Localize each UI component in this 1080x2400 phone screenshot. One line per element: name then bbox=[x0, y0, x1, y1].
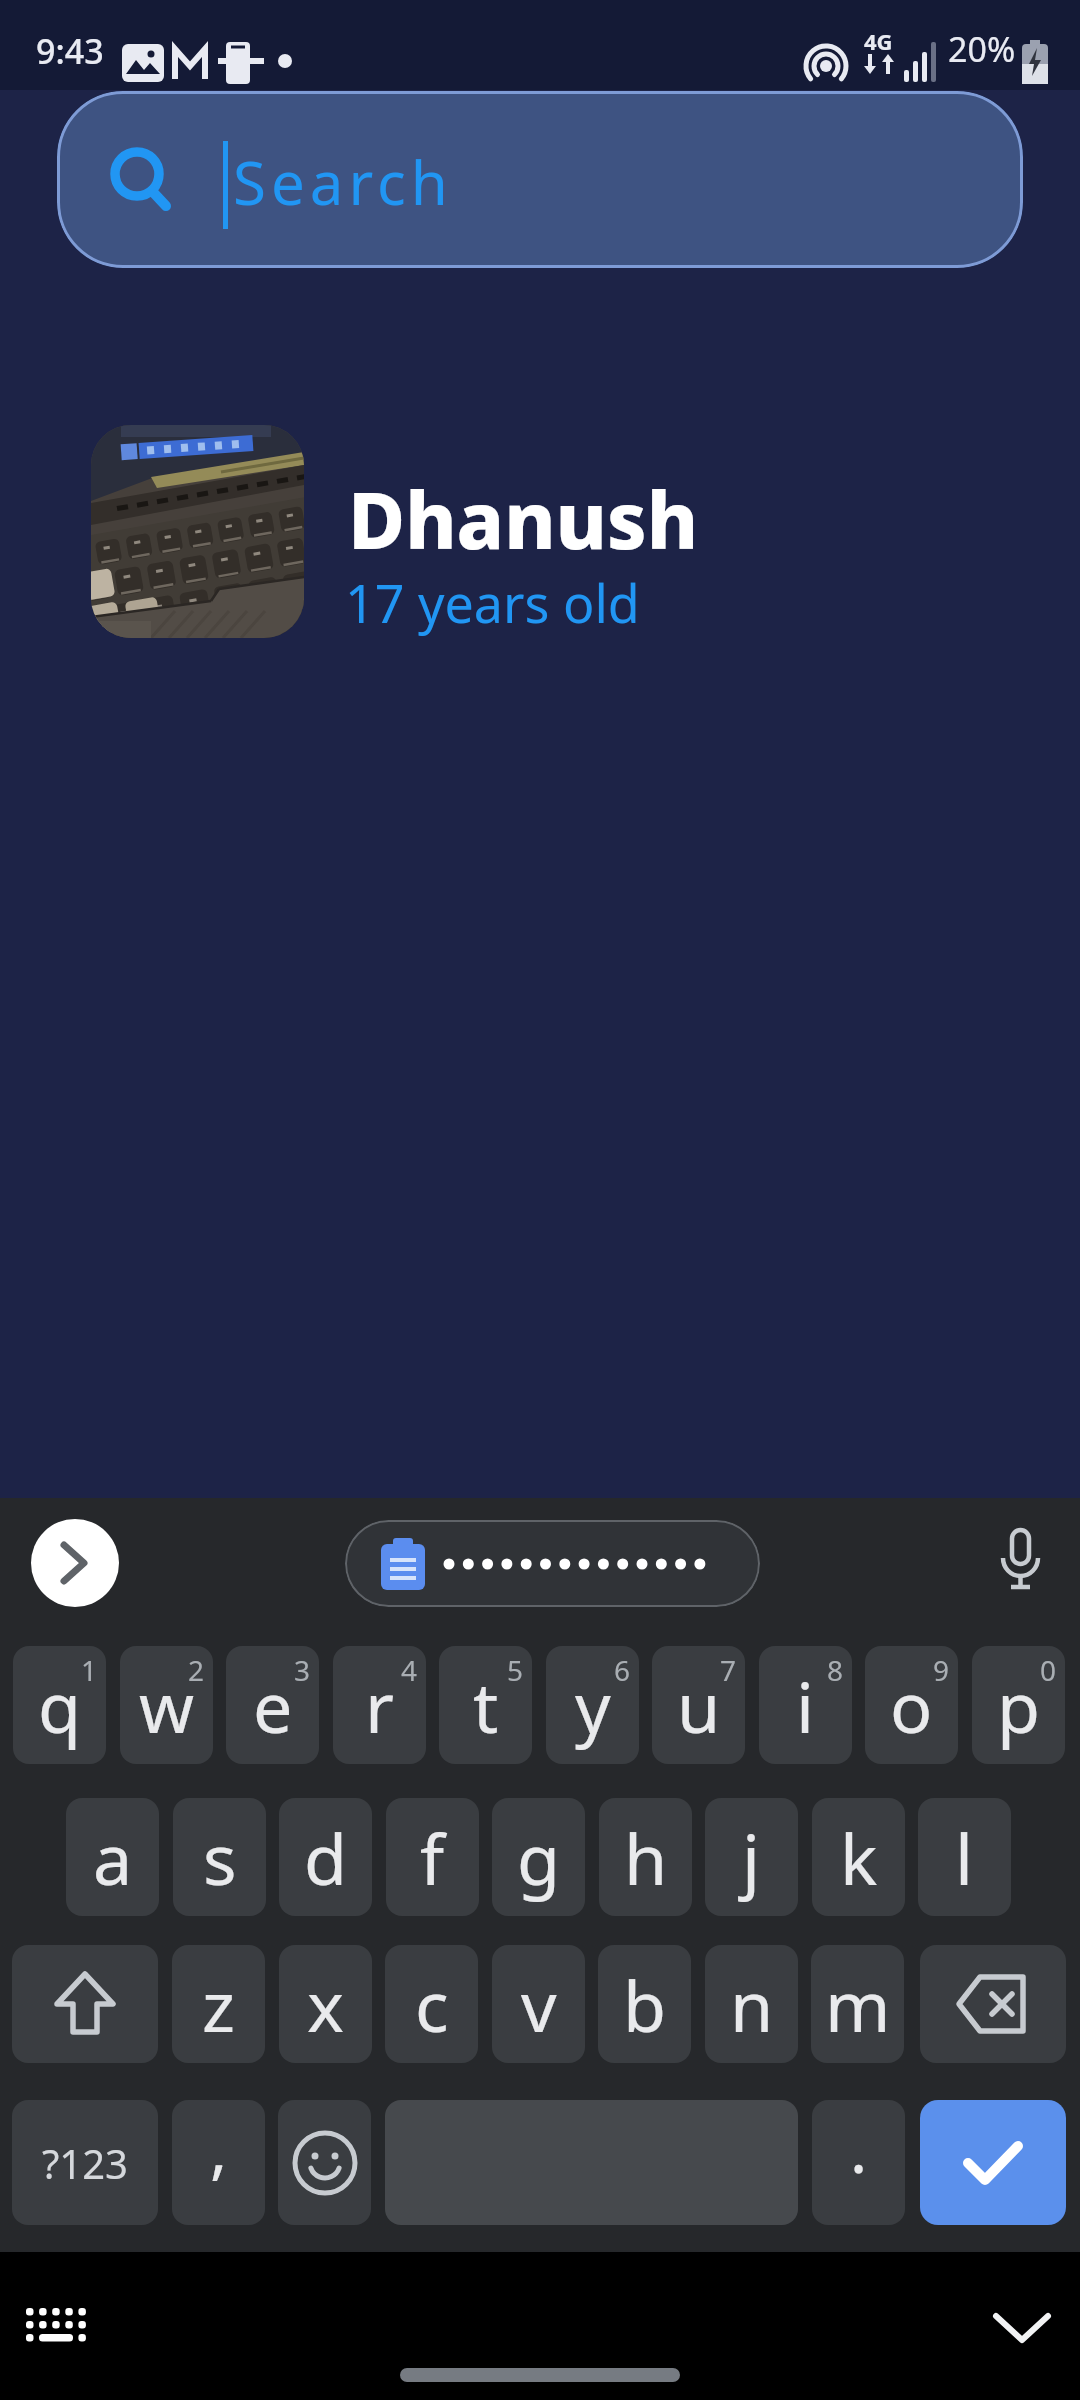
staticText: . bbox=[850, 2105, 868, 2192]
button[interactable]: e bbox=[226, 1646, 319, 1764]
button[interactable]: x bbox=[279, 1945, 372, 2063]
button[interactable] bbox=[31, 1519, 119, 1607]
staticText: 5 bbox=[507, 1651, 524, 1689]
button[interactable]: s bbox=[173, 1798, 266, 1916]
staticText: a bbox=[93, 1810, 133, 1905]
staticText: s bbox=[203, 1810, 237, 1905]
staticText: l bbox=[955, 1810, 974, 1905]
button[interactable]: u bbox=[652, 1646, 745, 1764]
button[interactable]: r bbox=[333, 1646, 426, 1764]
staticText: 3 bbox=[294, 1651, 311, 1689]
button[interactable]: t bbox=[439, 1646, 532, 1764]
button[interactable]: b bbox=[598, 1945, 691, 2063]
staticText: 6 bbox=[614, 1651, 631, 1689]
staticText: g bbox=[517, 1810, 561, 1905]
button[interactable] bbox=[920, 1945, 1066, 2063]
staticText: 9:43 bbox=[36, 28, 104, 74]
button[interactable] bbox=[998, 1528, 1042, 1594]
button[interactable] bbox=[920, 2100, 1066, 2225]
staticText: n bbox=[730, 1957, 774, 2052]
staticText: h bbox=[624, 1810, 668, 1905]
staticText: Search bbox=[233, 141, 453, 223]
staticText: v bbox=[521, 1957, 557, 2052]
button[interactable]: ?123 bbox=[12, 2100, 158, 2225]
staticText: p bbox=[997, 1658, 1041, 1753]
button[interactable]: m bbox=[811, 1945, 904, 2063]
staticText: 1 bbox=[81, 1651, 98, 1689]
button[interactable]: n bbox=[705, 1945, 798, 2063]
button[interactable]: w bbox=[120, 1646, 213, 1764]
staticText: m bbox=[825, 1957, 891, 2052]
button[interactable]: o bbox=[865, 1646, 958, 1764]
staticText: 8 bbox=[827, 1651, 844, 1689]
button[interactable]: g bbox=[492, 1798, 585, 1916]
button[interactable]: v bbox=[492, 1945, 585, 2063]
button[interactable]: a bbox=[66, 1798, 159, 1916]
staticText: w bbox=[139, 1658, 195, 1753]
staticText: j bbox=[742, 1810, 761, 1905]
staticText: 2 bbox=[188, 1651, 205, 1689]
staticText: 0 bbox=[1040, 1651, 1057, 1689]
staticText: f bbox=[420, 1810, 445, 1905]
staticText: d bbox=[304, 1810, 348, 1905]
button[interactable] bbox=[345, 1520, 760, 1607]
button[interactable]: , bbox=[172, 2100, 265, 2225]
staticText: u bbox=[677, 1658, 721, 1753]
button[interactable]: Search bbox=[57, 91, 1023, 268]
button[interactable]: q bbox=[13, 1646, 106, 1764]
button[interactable]: k bbox=[812, 1798, 905, 1916]
button[interactable]: c bbox=[385, 1945, 478, 2063]
button[interactable]: i bbox=[759, 1646, 852, 1764]
button[interactable] bbox=[26, 2308, 92, 2352]
staticText: 9 bbox=[933, 1651, 950, 1689]
staticText: o bbox=[890, 1658, 933, 1753]
button[interactable]: h bbox=[599, 1798, 692, 1916]
button[interactable]: d bbox=[279, 1798, 372, 1916]
staticText: e bbox=[253, 1658, 293, 1753]
button[interactable]: . bbox=[812, 2100, 905, 2225]
button[interactable] bbox=[278, 2100, 371, 2225]
staticText: 20% bbox=[948, 26, 1016, 72]
button[interactable] bbox=[992, 2312, 1052, 2348]
staticText: 4 bbox=[401, 1651, 418, 1689]
staticText: i bbox=[796, 1658, 815, 1753]
staticText: z bbox=[202, 1957, 235, 2052]
button[interactable]: Dhanush bbox=[0, 410, 1080, 650]
staticText: , bbox=[210, 2105, 228, 2192]
staticText: Dhanush bbox=[348, 466, 699, 572]
staticText: r bbox=[365, 1658, 394, 1753]
staticText: y bbox=[575, 1658, 611, 1753]
button[interactable]: f bbox=[386, 1798, 479, 1916]
button[interactable]: y bbox=[546, 1646, 639, 1764]
staticText: k bbox=[840, 1810, 878, 1905]
staticText: b bbox=[623, 1957, 667, 2052]
button[interactable]: p bbox=[972, 1646, 1065, 1764]
button[interactable] bbox=[12, 1945, 158, 2063]
staticText: 17 years old bbox=[345, 567, 640, 638]
staticText: c bbox=[415, 1957, 449, 2052]
staticText: ?123 bbox=[42, 2136, 128, 2190]
staticText: t bbox=[473, 1658, 499, 1753]
button[interactable]: z bbox=[172, 1945, 265, 2063]
staticText: 7 bbox=[720, 1651, 737, 1689]
staticText: x bbox=[307, 1957, 345, 2052]
button[interactable]: j bbox=[705, 1798, 798, 1916]
staticText: 4G bbox=[864, 26, 893, 56]
button[interactable]: l bbox=[918, 1798, 1011, 1916]
staticText: q bbox=[38, 1658, 82, 1753]
